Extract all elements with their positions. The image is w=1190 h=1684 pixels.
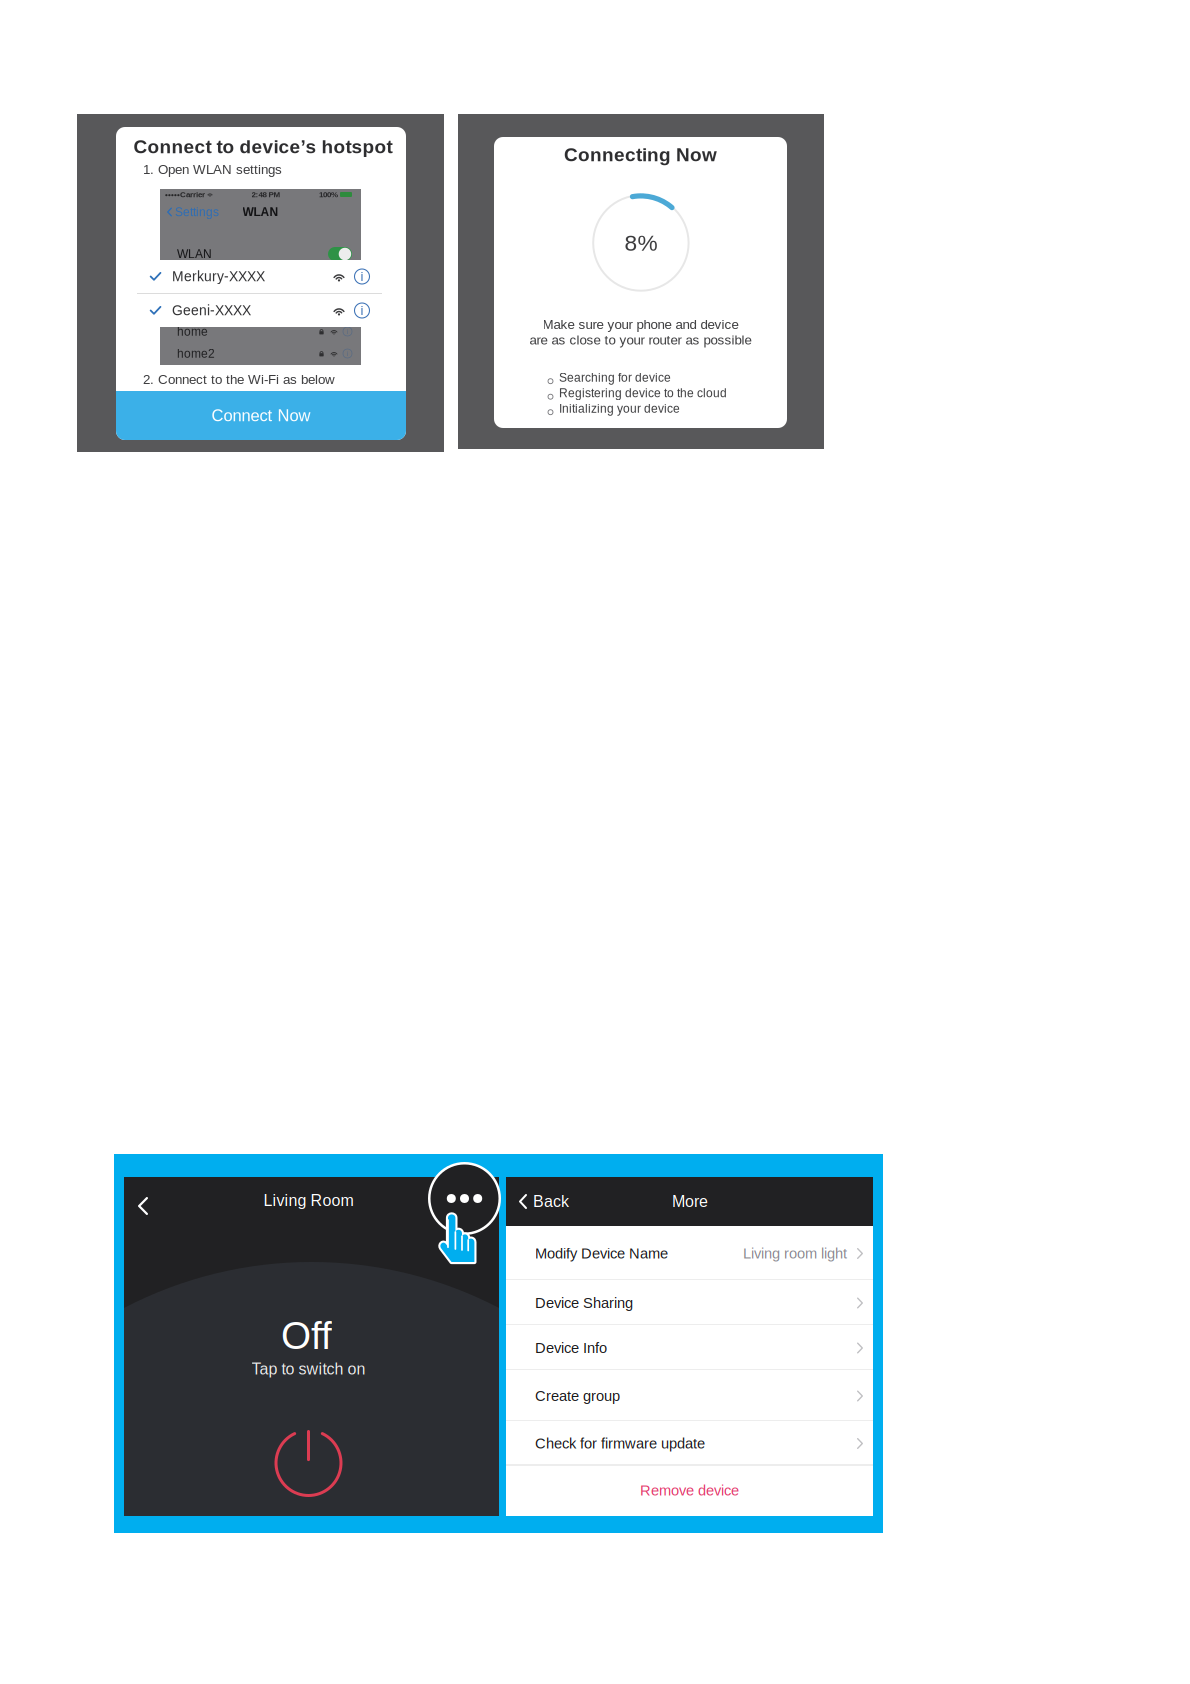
staticText: Living Room <box>263 1191 353 1209</box>
button[interactable]: Device Info <box>506 1325 873 1370</box>
staticText: 2. Connect to the Wi-Fi as below <box>143 372 335 387</box>
staticText: i <box>360 303 363 318</box>
button[interactable]: Check for firmware update <box>506 1421 873 1465</box>
staticText: WLAN <box>177 247 212 261</box>
button[interactable]: Geeni-XXXX <box>137 294 382 327</box>
button[interactable]: Back <box>506 1184 569 1219</box>
staticText: Connect to device’s hotspot <box>133 136 392 157</box>
button[interactable]: Remove device <box>506 1466 873 1515</box>
staticText: Tap to switch on <box>251 1360 365 1378</box>
button[interactable]: Create group <box>506 1370 873 1421</box>
staticText: Initializing your device <box>559 402 680 415</box>
staticText: 100% <box>319 190 338 199</box>
staticText: Connect Now <box>211 406 310 425</box>
staticText: Living room light <box>743 1245 847 1262</box>
button[interactable]: Modify Device Name <box>506 1226 873 1280</box>
staticText: i <box>346 349 348 358</box>
button[interactable]: Connect Now <box>116 391 406 440</box>
staticText: Searching for device <box>559 371 671 384</box>
staticText: i <box>360 269 363 284</box>
staticText: 1. Open WLAN settings <box>143 162 282 177</box>
button[interactable]: Device Sharing <box>506 1280 873 1325</box>
staticText: Settings <box>175 205 219 219</box>
staticText: •••••Carrier <box>165 190 205 199</box>
staticText: Remove device <box>640 1482 739 1499</box>
staticText: Merkury-XXXX <box>172 269 265 284</box>
staticText: WLAN <box>242 205 278 219</box>
staticText: 8% <box>624 230 657 256</box>
button[interactable]: Power on <box>274 1429 342 1497</box>
staticText: i <box>346 327 348 336</box>
button[interactable]: Merkury-XXXX <box>137 260 382 293</box>
staticText: Registering device to the cloud <box>559 386 727 400</box>
staticText: home <box>177 325 208 338</box>
staticText: Create group <box>535 1388 620 1404</box>
staticText: Device Sharing <box>535 1295 633 1311</box>
staticText: Check for firmware update <box>535 1435 705 1452</box>
staticText: More <box>672 1193 708 1210</box>
staticText: Geeni-XXXX <box>172 303 251 318</box>
staticText: Device Info <box>535 1340 607 1356</box>
staticText: Back <box>533 1193 569 1210</box>
staticText: home2 <box>177 347 215 360</box>
staticText: Connecting Now <box>564 144 717 165</box>
staticText: are as close to your router as possible <box>529 332 751 347</box>
staticText: 2:48 PM <box>251 190 280 199</box>
staticText: Make sure your phone and device <box>542 317 738 332</box>
staticText: Modify Device Name <box>535 1245 668 1262</box>
staticText: Off <box>281 1314 332 1357</box>
button[interactable]: Back <box>129 1189 157 1223</box>
